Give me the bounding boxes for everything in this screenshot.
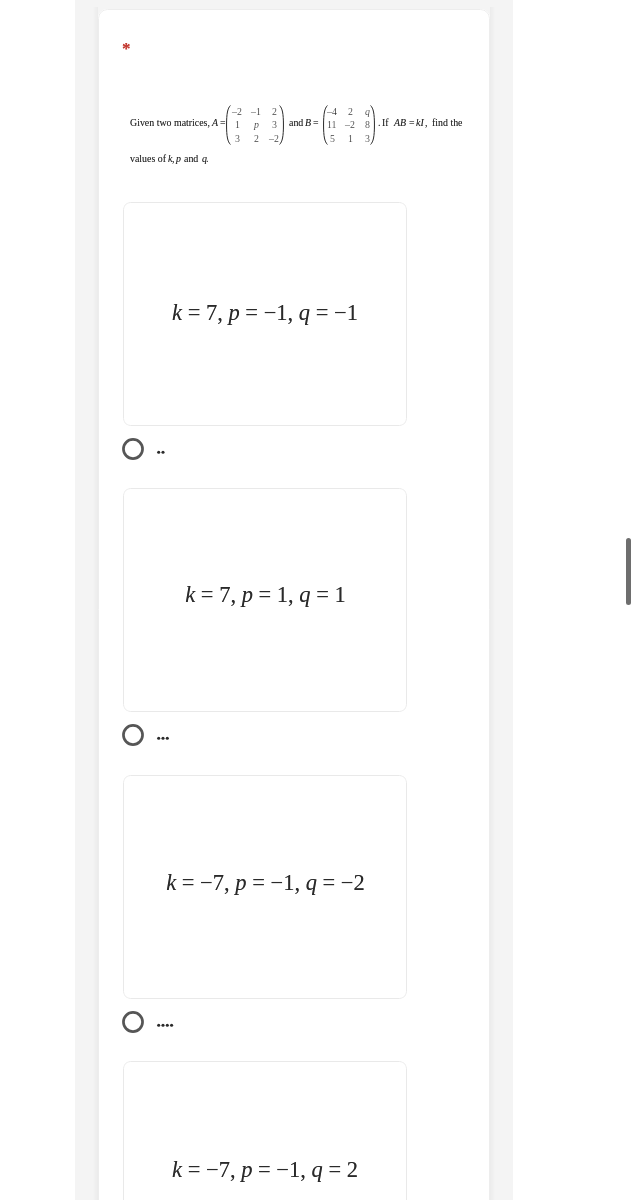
staticText: Given two matrices,	[130, 117, 210, 128]
staticText: .	[378, 117, 381, 128]
staticText: –4	[327, 106, 337, 117]
button[interactable]: Select answer option	[122, 1007, 302, 1037]
staticText: –2	[345, 119, 355, 130]
staticText: p	[176, 153, 181, 164]
staticText: AB	[394, 117, 407, 128]
staticText: 3	[365, 133, 370, 144]
staticText: 11	[327, 119, 337, 130]
staticText: .	[206, 153, 209, 164]
staticText: and	[184, 153, 199, 164]
staticText: =	[409, 117, 415, 128]
staticText: ,	[425, 117, 428, 128]
staticText: A	[212, 117, 219, 128]
staticText: k = 7, p = 1, q = 1	[185, 582, 346, 607]
staticText: and	[184, 153, 199, 164]
staticText: =	[313, 117, 319, 128]
staticText: B	[305, 117, 312, 128]
staticText: 3	[272, 119, 277, 130]
staticText: find the	[432, 117, 463, 128]
staticText: p	[176, 153, 181, 164]
staticText: =	[220, 117, 226, 128]
staticText: –2	[269, 133, 279, 144]
staticText: 2	[272, 106, 277, 117]
staticText: k = 7, p = −1, q = −1	[172, 300, 358, 325]
staticText: k	[168, 153, 173, 164]
staticText: values of	[130, 153, 166, 164]
staticText: A	[212, 117, 219, 128]
staticText: ,	[172, 153, 175, 164]
staticText: k = −7, p = −1, q = −2	[166, 870, 365, 895]
staticText: ,	[425, 117, 428, 128]
button[interactable]: k = −7, p = −1, q = 2	[123, 1061, 407, 1200]
staticText: 5	[330, 133, 335, 144]
staticText: .	[206, 153, 209, 164]
staticText: q	[202, 153, 207, 164]
button[interactable]: Select answer option	[122, 434, 302, 464]
staticText: –2	[232, 106, 242, 117]
button[interactable]: k = −7, p = −1, q = −2	[123, 775, 407, 999]
staticText: kI	[416, 117, 424, 128]
staticText: 1	[348, 133, 353, 144]
staticText: k = 7, p = −1, q = −1	[172, 300, 358, 325]
staticText: k = 7, p = 1, q = 1	[185, 582, 346, 607]
staticText: q	[365, 106, 370, 117]
staticText: k	[168, 153, 173, 164]
staticText: Given two matrices,	[130, 117, 210, 128]
staticText: If	[382, 117, 389, 128]
staticText: .	[378, 117, 381, 128]
staticText: k = −7, p = −1, q = 2	[172, 1157, 358, 1182]
staticText: AB	[394, 117, 407, 128]
staticText: =	[313, 117, 319, 128]
staticText: 3	[235, 133, 240, 144]
staticText: find the	[432, 117, 463, 128]
button[interactable]: k = 7, p = −1, q = −1	[123, 202, 407, 426]
staticText: =	[409, 117, 415, 128]
staticText: *	[122, 39, 131, 58]
staticText: 8	[365, 119, 370, 130]
staticText: B	[305, 117, 312, 128]
staticText: 1	[235, 119, 240, 130]
staticText: kI	[416, 117, 424, 128]
staticText: values of	[130, 153, 166, 164]
staticText: *	[122, 39, 131, 58]
staticText: q	[202, 153, 207, 164]
staticText: k = −7, p = −1, q = 2	[172, 1157, 358, 1182]
staticText: and	[289, 117, 304, 128]
button[interactable]: Select answer option	[122, 720, 302, 750]
staticText: p	[254, 119, 259, 130]
staticText: k = −7, p = −1, q = −2	[166, 870, 365, 895]
staticText: –1	[251, 106, 261, 117]
staticText: ,	[172, 153, 175, 164]
staticText: and	[289, 117, 304, 128]
staticText: If	[382, 117, 389, 128]
staticText: =	[220, 117, 226, 128]
staticText: 2	[254, 133, 259, 144]
staticText: 2	[348, 106, 353, 117]
button[interactable]: k = 7, p = 1, q = 1	[123, 488, 407, 712]
